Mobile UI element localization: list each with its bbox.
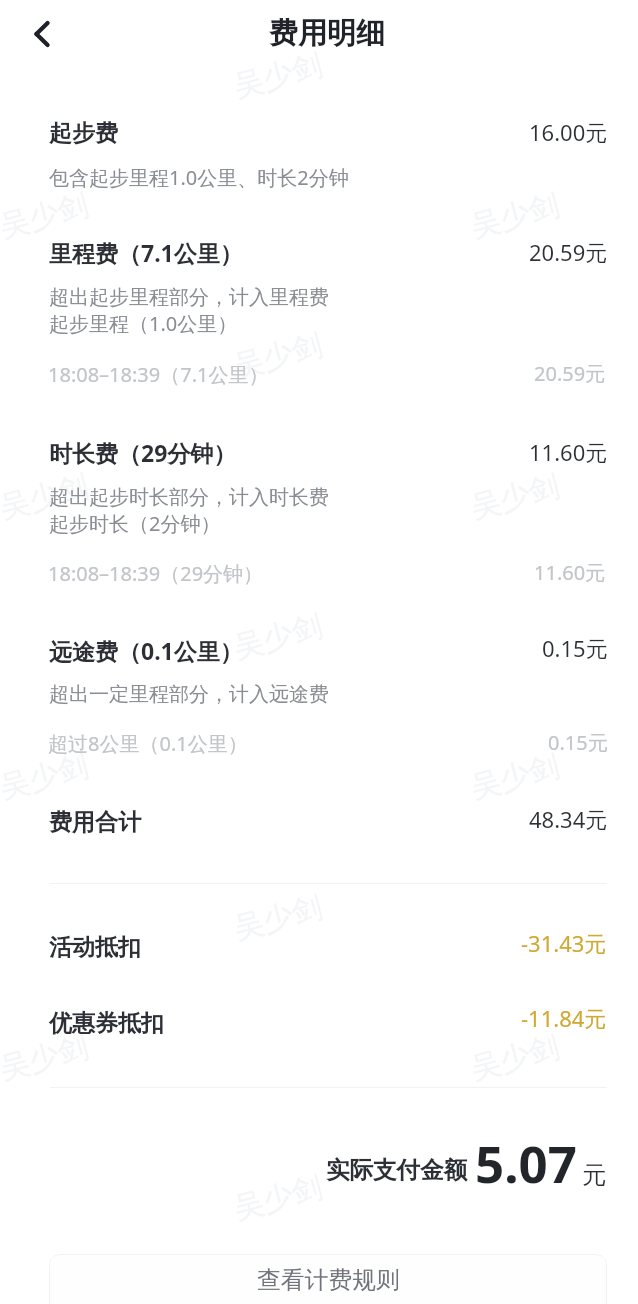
staticText: 吴少剑 bbox=[0, 467, 92, 527]
staticText: 吴少剑 bbox=[467, 186, 563, 246]
staticText: -31.43元 bbox=[521, 928, 607, 958]
staticText: 48.34元 bbox=[529, 804, 608, 834]
staticText: 实际支付金额 bbox=[326, 1155, 467, 1185]
staticText: 5.07 bbox=[475, 1128, 577, 1197]
staticText: 18:08–18:39（7.1公里） bbox=[48, 361, 269, 388]
staticText: 元 bbox=[582, 1160, 606, 1190]
staticText: 超过8公里（0.1公里） bbox=[48, 730, 248, 757]
staticText: 吴少剑 bbox=[230, 888, 326, 948]
staticText: 超出起步里程部分，计入里程费 bbox=[49, 285, 329, 310]
staticText: 20.59元 bbox=[534, 360, 606, 387]
staticText: 吴少剑 bbox=[230, 607, 326, 667]
staticText: 吴少剑 bbox=[467, 1028, 563, 1088]
staticText: 费用合计 bbox=[49, 808, 141, 837]
staticText: 吴少剑 bbox=[230, 46, 326, 106]
staticText: 包含起步里程1.0公里、时长2分钟 bbox=[49, 164, 349, 191]
staticText: 吴少剑 bbox=[0, 1028, 92, 1088]
staticText: 活动抵扣 bbox=[49, 933, 141, 962]
staticText: 16.00元 bbox=[529, 117, 608, 147]
staticText: 起步里程（1.0公里） bbox=[49, 310, 238, 337]
staticText: 超出一定里程部分，计入远途费 bbox=[49, 682, 329, 707]
staticText: 费用明细 bbox=[269, 15, 385, 52]
staticText: 远途费（0.1公里） bbox=[49, 635, 243, 666]
staticText: 起步时长（2分钟） bbox=[49, 510, 221, 537]
staticText: 吴少剑 bbox=[230, 1168, 326, 1228]
staticText: 吴少剑 bbox=[0, 747, 92, 807]
staticText: 优惠券抵扣 bbox=[49, 1009, 164, 1038]
staticText: 时长费（29分钟） bbox=[49, 437, 237, 468]
button[interactable]: Back bbox=[14, 6, 69, 61]
staticText: 11.60元 bbox=[534, 559, 606, 586]
staticText: 吴少剑 bbox=[0, 186, 92, 246]
staticText: 里程费（7.1公里） bbox=[49, 237, 243, 268]
staticText: 吴少剑 bbox=[467, 467, 563, 527]
staticText: -11.84元 bbox=[521, 1003, 607, 1033]
staticText: 11.60元 bbox=[529, 437, 608, 467]
staticText: 吴少剑 bbox=[230, 326, 326, 386]
staticText: 超出起步时长部分，计入时长费 bbox=[49, 485, 329, 510]
staticText: 起步费 bbox=[49, 119, 118, 148]
staticText: 0.15元 bbox=[548, 729, 608, 756]
staticText: 0.15元 bbox=[542, 633, 608, 663]
staticText: 查看计费规则 bbox=[257, 1265, 400, 1295]
button[interactable]: 查看计费规则 bbox=[49, 1254, 607, 1304]
staticText: 吴少剑 bbox=[467, 747, 563, 807]
staticText: 18:08–18:39（29分钟） bbox=[48, 560, 264, 587]
staticText: 20.59元 bbox=[529, 237, 608, 267]
